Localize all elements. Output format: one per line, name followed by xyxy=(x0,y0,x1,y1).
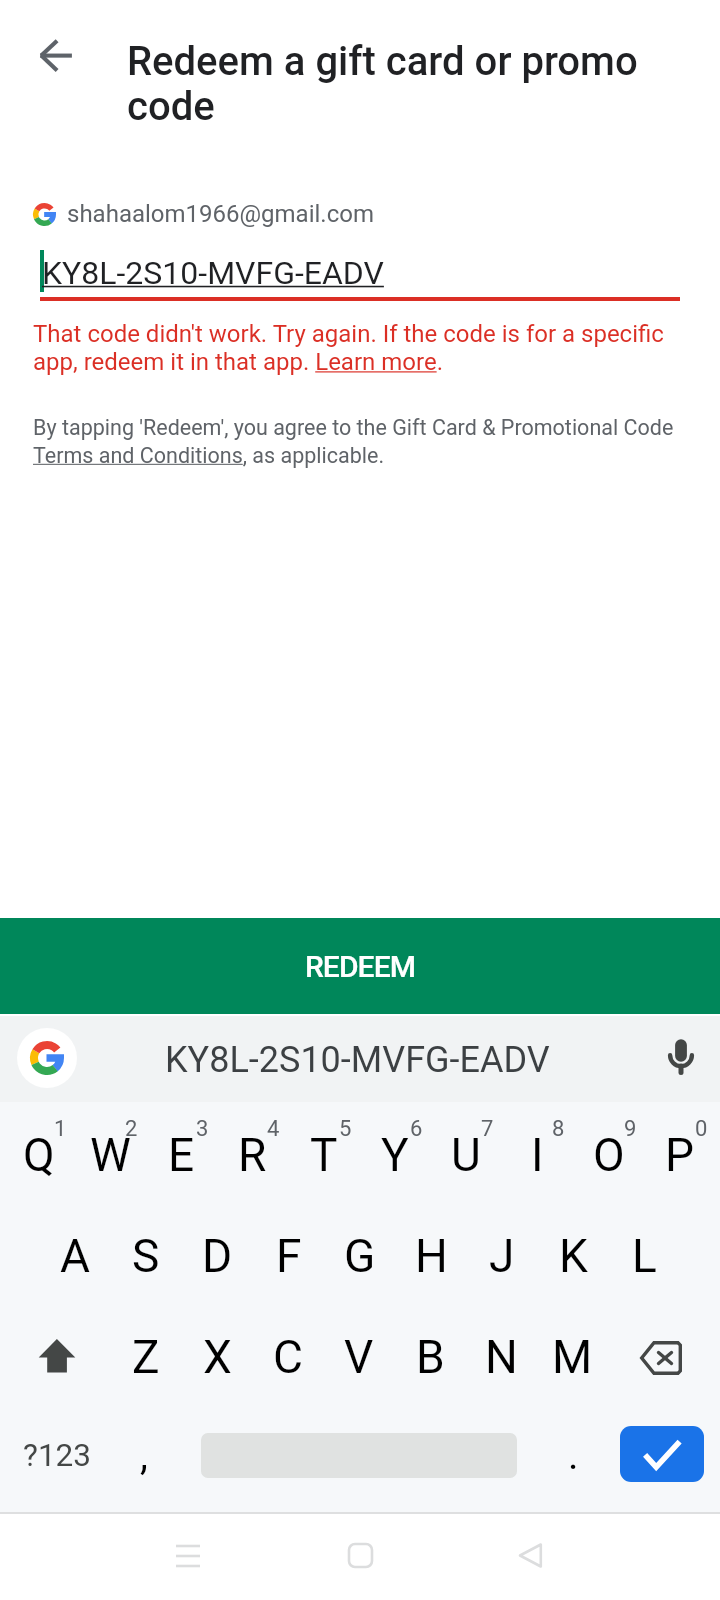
staticText: G xyxy=(344,1229,376,1283)
button[interactable]: T xyxy=(288,1120,360,1190)
button[interactable]: I xyxy=(501,1120,573,1190)
staticText: 8 xyxy=(552,1116,565,1142)
button[interactable]: Q xyxy=(3,1120,75,1190)
staticText: P xyxy=(665,1128,695,1182)
button[interactable]: Z xyxy=(110,1322,182,1392)
button[interactable]: V xyxy=(323,1322,395,1392)
button[interactable]: ?123 xyxy=(12,1420,102,1490)
button[interactable]: D xyxy=(181,1221,253,1291)
staticText: . xyxy=(568,1432,579,1479)
button[interactable]: Back xyxy=(495,1520,565,1590)
staticText: U xyxy=(451,1128,481,1182)
staticText: 4 xyxy=(267,1116,280,1142)
staticText: 7 xyxy=(481,1116,494,1142)
button[interactable]: Back xyxy=(24,23,88,87)
staticText: 1 xyxy=(54,1116,67,1142)
button[interactable]: KY8L-2S10-MVFG-EADV xyxy=(165,1039,550,1081)
button[interactable]: Enter xyxy=(620,1426,704,1482)
button[interactable]: O xyxy=(573,1120,645,1190)
staticText: Redeem a gift card or promo code xyxy=(127,38,662,129)
button[interactable]: E xyxy=(145,1120,217,1190)
staticText: 6 xyxy=(410,1116,423,1142)
staticText: Y xyxy=(381,1128,409,1182)
staticText: 0 xyxy=(695,1116,708,1142)
staticText: shahaalom1966@gmail.com xyxy=(67,200,374,228)
button[interactable]: B xyxy=(394,1322,466,1392)
staticText: W xyxy=(90,1128,131,1182)
button[interactable]: Home xyxy=(325,1520,395,1590)
button[interactable]: N xyxy=(465,1322,537,1392)
button[interactable]: , xyxy=(119,1420,169,1490)
button[interactable]: R xyxy=(216,1120,288,1190)
staticText: L xyxy=(632,1229,657,1283)
staticText: E xyxy=(168,1128,195,1182)
button[interactable]: S xyxy=(110,1221,182,1291)
button[interactable]: Backspace xyxy=(625,1325,697,1397)
button[interactable]: W xyxy=(74,1120,146,1190)
staticText: A xyxy=(60,1229,91,1283)
staticText: By tapping 'Redeem', you agree to the Gi… xyxy=(33,415,688,468)
staticText: D xyxy=(202,1229,233,1283)
button[interactable]: P xyxy=(644,1120,716,1190)
staticText: O xyxy=(593,1128,625,1182)
button[interactable]: L xyxy=(608,1221,680,1291)
button[interactable]: J xyxy=(466,1221,538,1291)
button[interactable]: K xyxy=(537,1221,609,1291)
button[interactable]: Recent apps xyxy=(153,1520,223,1590)
staticText: V xyxy=(344,1330,374,1384)
staticText: C xyxy=(273,1330,303,1384)
button[interactable]: . xyxy=(548,1420,598,1490)
button[interactable]: Shift xyxy=(21,1322,93,1394)
button[interactable]: U xyxy=(430,1120,502,1190)
staticText: B xyxy=(416,1330,445,1384)
staticText: M xyxy=(552,1330,593,1384)
button[interactable]: REDEEM xyxy=(0,918,720,1014)
button[interactable]: C xyxy=(252,1322,324,1392)
staticText: That code didn't work. Try again. If the… xyxy=(33,320,681,376)
button[interactable]: M xyxy=(536,1322,608,1392)
staticText: , xyxy=(140,1432,148,1479)
button[interactable]: KY8L-2S10-MVFG-EADV xyxy=(42,254,384,292)
button[interactable]: A xyxy=(39,1221,111,1291)
button[interactable]: Google Assistant xyxy=(17,1028,77,1088)
staticText: F xyxy=(276,1229,302,1283)
staticText: H xyxy=(415,1229,448,1283)
staticText: 9 xyxy=(624,1116,637,1142)
staticText: 5 xyxy=(339,1116,352,1142)
staticText: R xyxy=(238,1128,267,1182)
staticText: I xyxy=(531,1128,544,1182)
staticText: T xyxy=(310,1128,338,1182)
staticText: ?123 xyxy=(23,1437,91,1474)
staticText: X xyxy=(203,1330,232,1384)
staticText: 2 xyxy=(125,1116,138,1142)
button[interactable]: Y xyxy=(359,1120,431,1190)
button[interactable]: G xyxy=(324,1221,396,1291)
button[interactable]: Voice input xyxy=(653,1030,709,1086)
staticText: 3 xyxy=(196,1116,209,1142)
button[interactable]: F xyxy=(253,1221,325,1291)
staticText: J xyxy=(489,1229,515,1283)
staticText: Q xyxy=(23,1128,55,1182)
staticText: REDEEM xyxy=(305,949,416,984)
button[interactable]: H xyxy=(395,1221,467,1291)
staticText: Z xyxy=(132,1330,160,1384)
button[interactable]: X xyxy=(181,1322,253,1392)
staticText: K xyxy=(559,1229,588,1283)
staticText: S xyxy=(132,1229,160,1283)
staticText: N xyxy=(485,1330,518,1384)
